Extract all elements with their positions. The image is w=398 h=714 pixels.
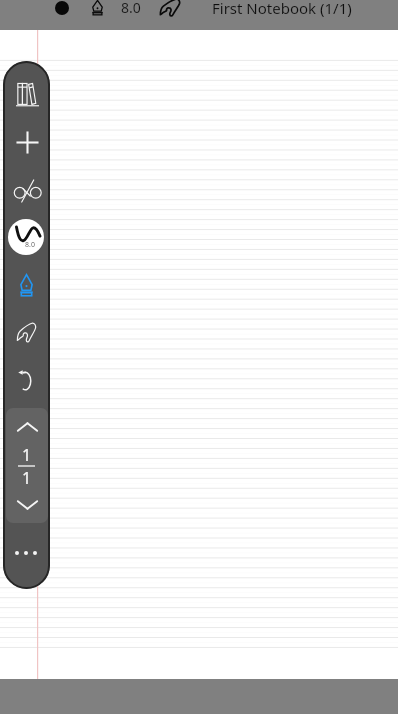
button[interactable]: Pen tool — [84, 0, 110, 20]
button[interactable]: Fountain pen — [10, 269, 43, 301]
staticText: First Notebook (1/1) — [212, 0, 352, 18]
staticText: 1 — [22, 467, 32, 489]
button[interactable]: Notebooks — [10, 77, 44, 111]
button[interactable]: Pan — [10, 316, 43, 349]
staticText: 8.0 — [25, 240, 35, 250]
button[interactable]: Next page — [6, 486, 48, 524]
button[interactable]: Previous page — [6, 408, 48, 446]
button[interactable]: More options — [8, 542, 44, 564]
button[interactable]: Cut — [10, 173, 44, 207]
button[interactable]: Current colour — [49, 0, 75, 20]
button[interactable]: New page — [10, 125, 44, 159]
button[interactable]: Undo — [8, 364, 41, 397]
button[interactable]: Palm rejection — [155, 0, 185, 20]
staticText: 8.0 — [121, 0, 141, 17]
button[interactable]: Stroke width 8.0 — [8, 219, 44, 255]
staticText: 1 — [22, 444, 32, 466]
